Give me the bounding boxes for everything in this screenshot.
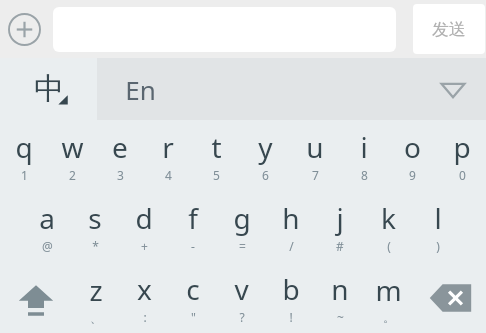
staticText: ? — [239, 309, 245, 325]
staticText: 1 — [21, 167, 28, 183]
staticText: 7 — [312, 167, 319, 183]
staticText: m — [375, 271, 402, 309]
staticText: " — [191, 309, 196, 325]
staticText: / — [289, 238, 294, 254]
staticText: : — [143, 309, 147, 325]
staticText: k — [381, 199, 396, 237]
staticText: r — [162, 128, 174, 166]
button[interactable]: r — [144, 120, 192, 191]
staticText: 3 — [117, 167, 124, 183]
button[interactable]: d — [119, 191, 168, 262]
staticText: - — [191, 238, 195, 254]
staticText: t — [211, 128, 222, 166]
button[interactable]: n — [315, 262, 364, 333]
staticText: x — [137, 270, 152, 308]
staticText: y — [258, 128, 273, 166]
staticText: 发送 — [432, 19, 466, 40]
staticText: 0 — [459, 167, 466, 183]
button[interactable]: v — [217, 262, 266, 333]
button[interactable]: w — [48, 120, 96, 191]
button[interactable]: e — [96, 120, 144, 191]
button[interactable]: Backspace — [413, 262, 486, 333]
staticText: @ — [42, 238, 53, 254]
staticText: h — [282, 199, 300, 237]
staticText: 2 — [69, 167, 76, 183]
staticText: f — [188, 199, 198, 237]
button[interactable]: a — [23, 191, 71, 262]
button[interactable]: x — [120, 262, 168, 333]
staticText: u — [306, 128, 324, 166]
button[interactable]: p — [437, 120, 486, 191]
staticText: * — [92, 238, 99, 254]
staticText: En — [125, 72, 156, 107]
button[interactable]: y — [241, 120, 290, 191]
button[interactable]: l — [413, 191, 462, 262]
button[interactable]: c — [168, 262, 217, 333]
staticText: z — [89, 271, 103, 309]
staticText: w — [61, 128, 84, 166]
button[interactable]: Add attachment — [3, 8, 45, 50]
button[interactable]: b — [266, 262, 315, 333]
staticText: 。 — [383, 310, 395, 325]
staticText: 9 — [409, 167, 416, 183]
button[interactable]: o — [388, 120, 437, 191]
staticText: g — [233, 199, 251, 237]
staticText: ( — [387, 238, 391, 254]
button[interactable]: g — [217, 191, 266, 262]
staticText: l — [434, 199, 442, 237]
button[interactable]: k — [364, 191, 413, 262]
staticText: a — [39, 199, 55, 237]
staticText: 5 — [213, 167, 220, 183]
staticText: 8 — [361, 167, 368, 183]
staticText: p — [453, 128, 471, 166]
button[interactable]: s — [71, 191, 119, 262]
staticText: n — [331, 270, 349, 308]
staticText: ~ — [337, 309, 344, 325]
staticText: ) — [436, 238, 440, 254]
button[interactable]: Hide keyboard — [432, 68, 474, 110]
button[interactable]: Shift — [0, 262, 72, 333]
staticText: b — [282, 270, 300, 308]
staticText: i — [360, 128, 368, 166]
button[interactable]: z — [72, 262, 120, 333]
staticText: + — [141, 238, 148, 254]
staticText: 中 — [34, 70, 64, 108]
staticText: 4 — [165, 167, 172, 183]
button[interactable]: h — [266, 191, 315, 262]
staticText: 6 — [262, 167, 269, 183]
staticText: v — [234, 270, 249, 308]
button[interactable]: m — [364, 262, 413, 333]
staticText: d — [135, 199, 153, 237]
button[interactable]: u — [290, 120, 339, 191]
button[interactable]: q — [0, 120, 48, 191]
staticText: ! — [289, 309, 293, 325]
button[interactable]: i — [339, 120, 388, 191]
button[interactable]: En — [125, 58, 255, 120]
staticText: s — [88, 199, 102, 237]
staticText: e — [112, 128, 128, 166]
staticText: = — [239, 238, 246, 254]
staticText: o — [404, 128, 421, 166]
button[interactable]: f — [168, 191, 217, 262]
button[interactable]: 中 — [0, 58, 97, 120]
staticText: q — [15, 128, 33, 166]
button[interactable]: t — [192, 120, 241, 191]
button[interactable]: j — [315, 191, 364, 262]
staticText: 、 — [90, 310, 102, 325]
staticText: c — [186, 270, 200, 308]
staticText: j — [336, 199, 344, 237]
button[interactable]: 发送 — [413, 4, 485, 54]
staticText: # — [336, 238, 344, 254]
